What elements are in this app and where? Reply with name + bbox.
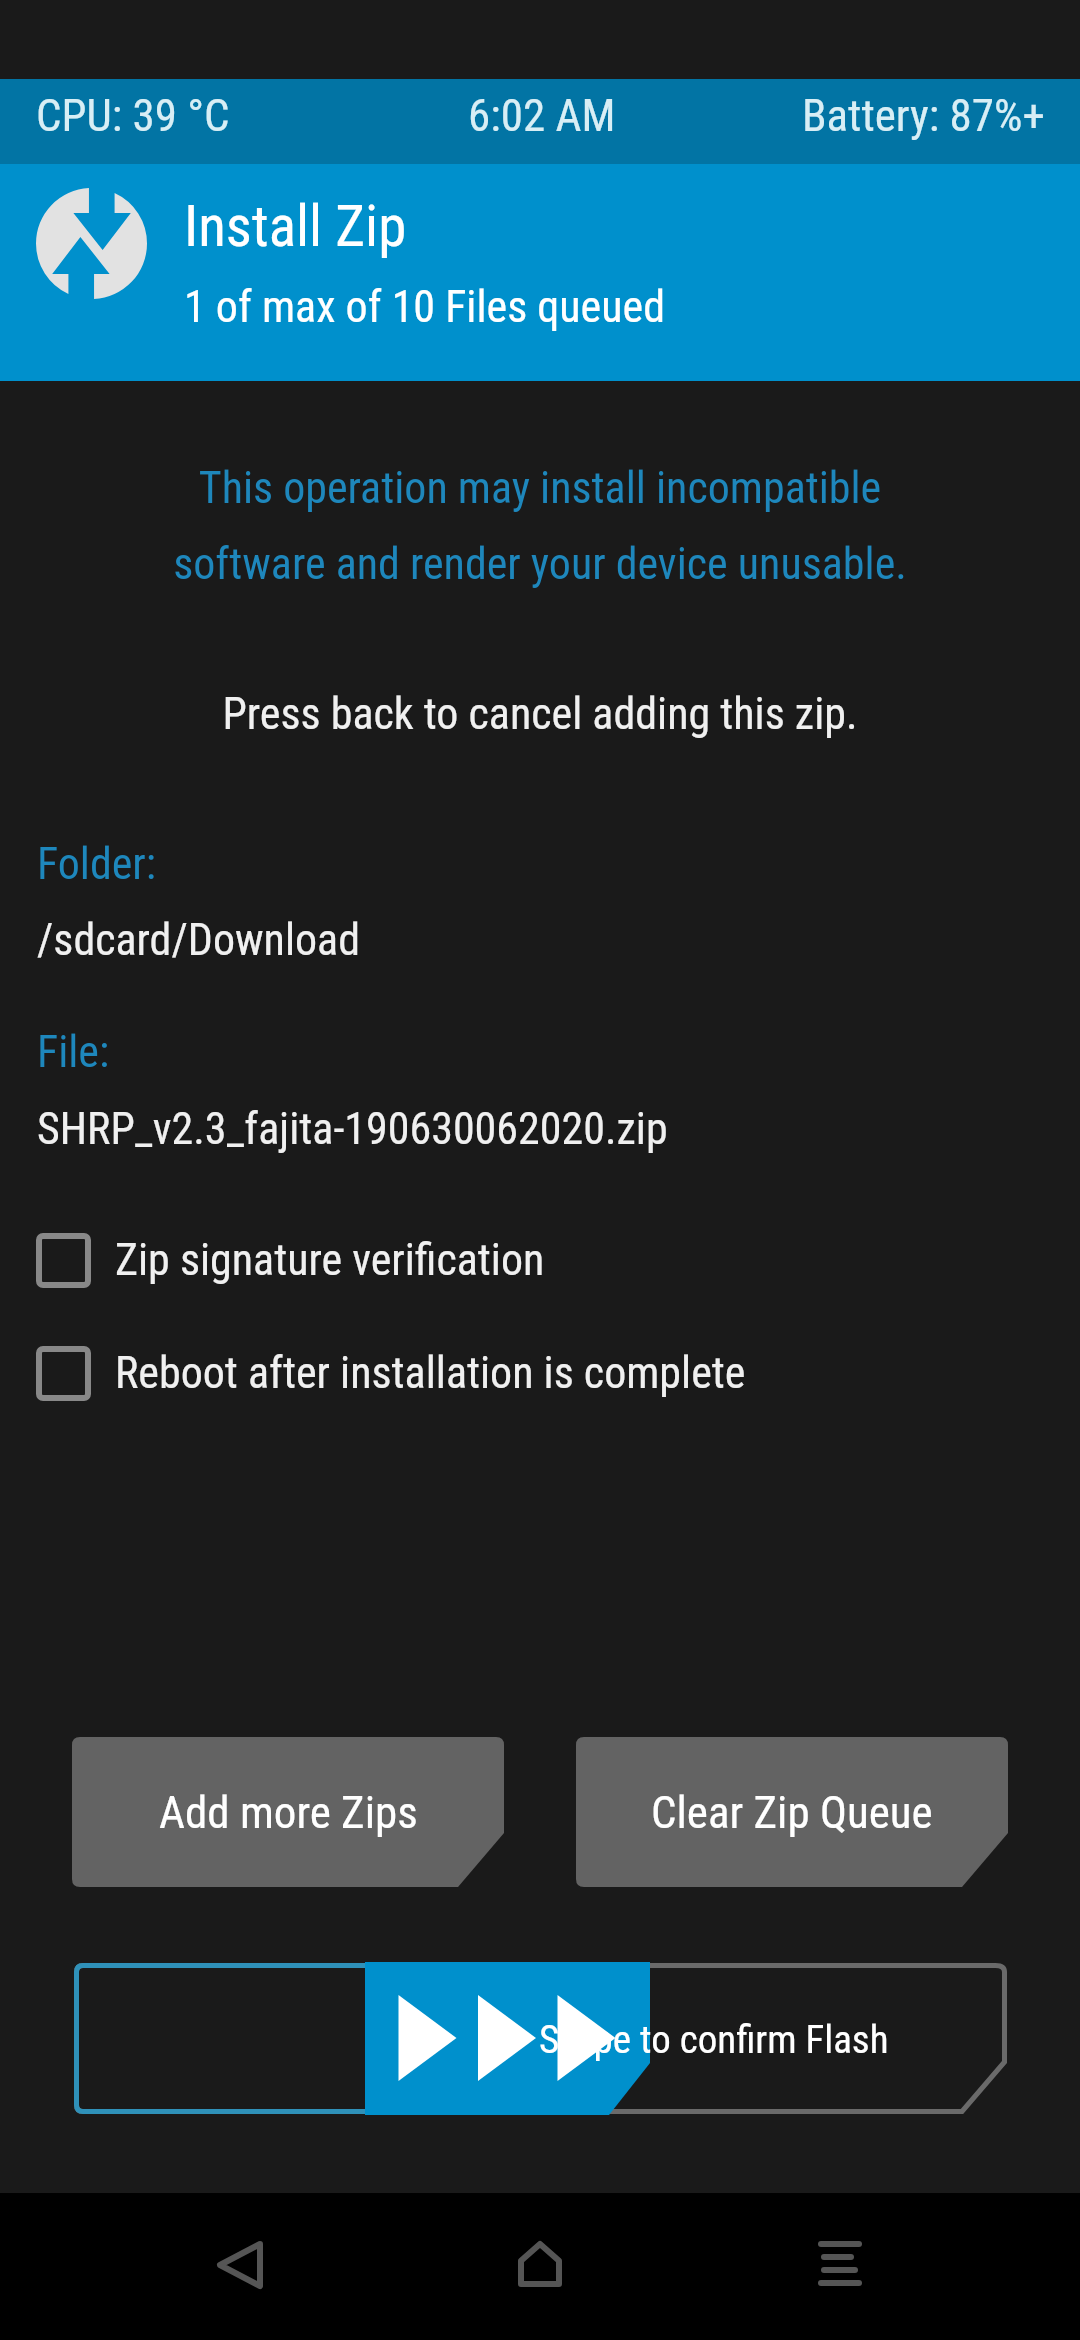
staticText: Swipe to confirm Flash [539, 2017, 889, 2063]
button[interactable]: Add more Zips [72, 1737, 504, 1887]
button[interactable]: Clear Zip Queue [576, 1737, 1008, 1887]
staticText: File: [37, 1026, 110, 1078]
staticText: /sdcard/Download [37, 914, 360, 966]
staticText: Zip signature verification [115, 1234, 545, 1286]
staticText: Folder: [37, 838, 157, 890]
staticText: Install Zip [184, 193, 407, 260]
button[interactable]: Back [180, 2205, 300, 2325]
button[interactable]: Home [480, 2204, 600, 2324]
staticText: Press back to cancel adding this zip. [0, 688, 1080, 740]
staticText: 1 of max of 10 Files queued [184, 281, 665, 333]
staticText: 6:02 AM [468, 89, 616, 142]
staticText: Battery: 87%+ [802, 89, 1045, 142]
staticText: This operation may install incompatible … [0, 462, 1080, 590]
button[interactable]: Menu [780, 2203, 900, 2323]
staticText: Clear Zip Queue [651, 1786, 933, 1839]
button[interactable]: Zip signature verification [0, 1230, 1080, 1290]
staticText: Reboot after installation is complete [115, 1347, 746, 1399]
button[interactable]: Swipe to confirm Flash [74, 1963, 1007, 2114]
staticText: SHRP_v2.3_fajita-190630062020.zip [37, 1103, 668, 1155]
button[interactable]: Reboot after installation is complete [0, 1343, 1080, 1403]
staticText: CPU: 39 °C [36, 89, 230, 142]
staticText: Add more Zips [159, 1786, 418, 1839]
